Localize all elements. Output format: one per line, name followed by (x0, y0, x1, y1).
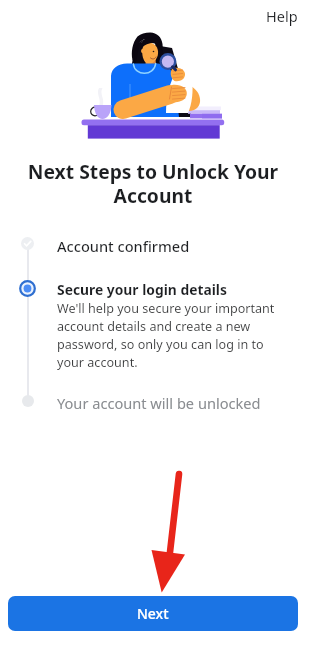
staticText: Next (137, 604, 169, 623)
staticText: Account confirmed (57, 236, 190, 256)
staticText: Next Steps to Unlock Your Account (20, 158, 286, 208)
button[interactable]: Your account will be unlocked (0, 391, 314, 415)
button[interactable]: Next (8, 596, 298, 631)
staticText: Help (266, 6, 298, 26)
staticText: We'll help you secure your important acc… (57, 300, 277, 371)
button[interactable]: Secure your login details (0, 278, 314, 373)
staticText: Your account will be unlocked (57, 393, 261, 413)
button[interactable]: Help (254, 0, 310, 32)
button[interactable]: Account confirmed (0, 234, 314, 258)
staticText: Secure your login details (57, 280, 227, 299)
